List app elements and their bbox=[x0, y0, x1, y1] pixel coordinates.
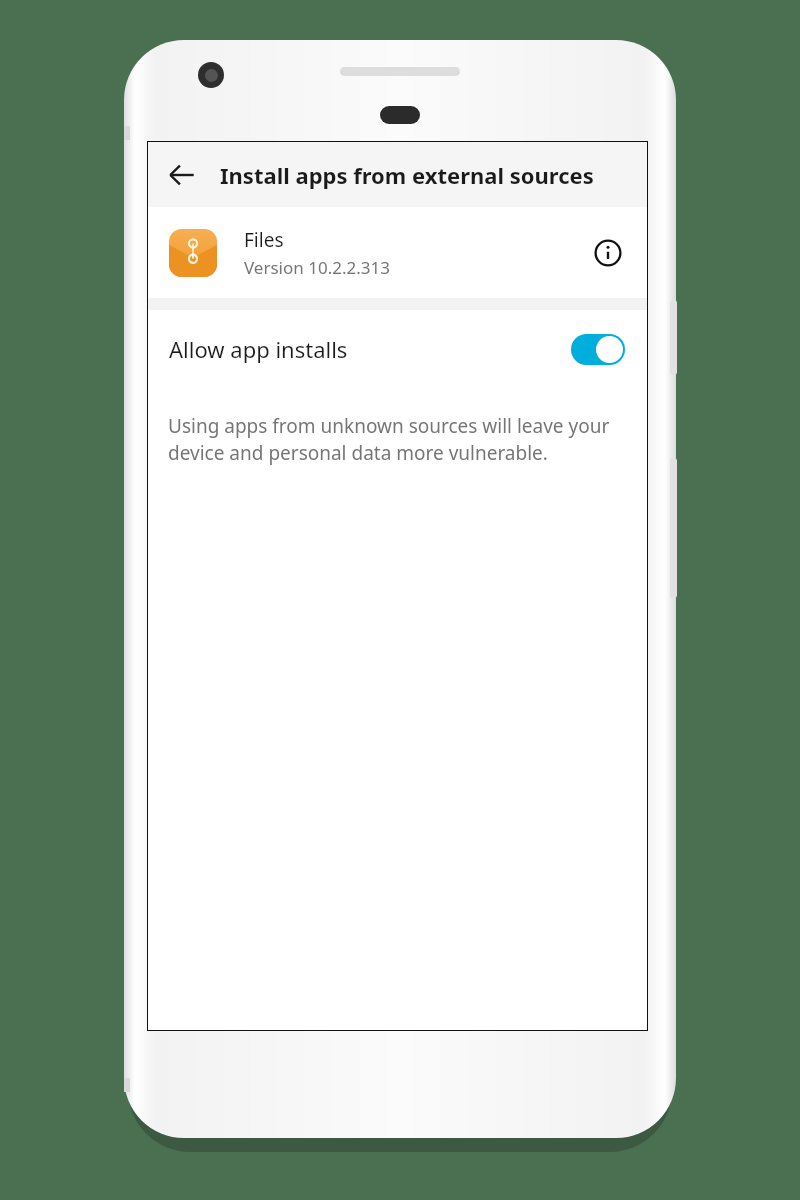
button[interactable]: Back bbox=[158, 151, 206, 199]
button[interactable]: Allow app installs bbox=[148, 310, 647, 388]
button[interactable]: Files bbox=[148, 207, 647, 298]
button[interactable]: Allow app installs toggle bbox=[571, 334, 625, 365]
staticText: Files bbox=[244, 227, 284, 253]
staticText: Allow app installs bbox=[169, 334, 571, 364]
button[interactable]: App info bbox=[585, 230, 631, 276]
staticText: Install apps from external sources bbox=[220, 160, 594, 190]
staticText: Version 10.2.2.313 bbox=[244, 256, 390, 279]
staticText: Using apps from unknown sources will lea… bbox=[168, 413, 627, 466]
